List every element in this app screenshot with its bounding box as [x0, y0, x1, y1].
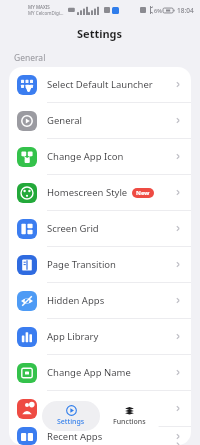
staticText: General	[14, 52, 46, 64]
button[interactable]: Hidden Apps	[9, 283, 191, 318]
staticText: General	[47, 114, 83, 127]
staticText: Select Default Launcher	[47, 78, 153, 91]
staticText: Change App Name	[47, 366, 131, 379]
staticText: MY MAXIS	[28, 4, 50, 10]
button[interactable]: Settings	[42, 401, 100, 431]
button[interactable]: Screen Grid	[9, 211, 191, 246]
button[interactable]: App Library	[9, 319, 191, 354]
staticText: MY CelcomDigi...	[28, 10, 64, 16]
staticText: Recent Apps	[47, 430, 103, 443]
staticText: Badge Notifications	[47, 402, 135, 415]
staticText: Settings	[57, 417, 85, 427]
button[interactable]: Select Default Launcher	[9, 67, 191, 102]
staticText: Change App Icon	[47, 150, 124, 163]
staticText: Screen Grid	[47, 222, 99, 235]
staticText: Page Transition	[47, 258, 116, 271]
staticText: Functions	[113, 417, 146, 427]
staticText: 18:04	[177, 6, 194, 15]
staticText: Homescreen Style	[47, 186, 128, 199]
button[interactable]: Page Transition	[9, 247, 191, 282]
button[interactable]: Change App Icon	[9, 139, 191, 174]
button[interactable]: Functions	[100, 401, 159, 431]
staticText: 6%	[154, 7, 162, 14]
button[interactable]: Homescreen Style	[9, 175, 191, 210]
staticText: New	[136, 189, 150, 197]
button[interactable]: Recent Apps	[9, 427, 191, 445]
staticText: Settings	[77, 26, 123, 41]
button[interactable]: Change App Name	[9, 355, 191, 390]
staticText: App Library	[47, 330, 99, 343]
button[interactable]: Badge Notifications	[9, 391, 191, 426]
button[interactable]: General	[9, 103, 191, 138]
staticText: Hidden Apps	[47, 294, 105, 307]
